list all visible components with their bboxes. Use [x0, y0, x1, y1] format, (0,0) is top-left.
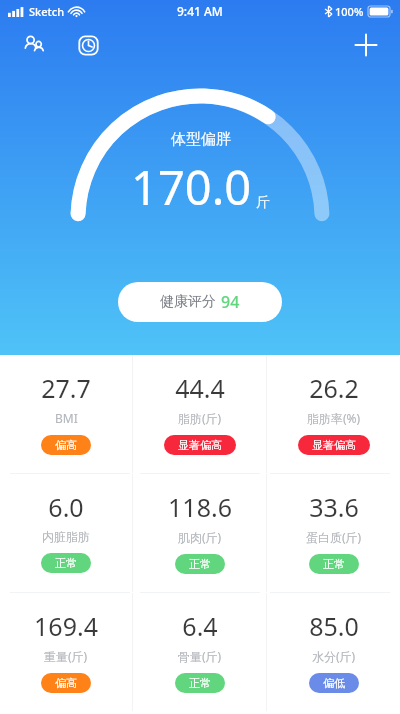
staticText: 显著偏高	[312, 438, 356, 452]
button[interactable]: 健康评分	[118, 282, 282, 322]
staticText: 85.0	[309, 609, 359, 643]
staticText: 斤	[256, 194, 270, 212]
staticText: 27.7	[41, 371, 91, 405]
staticText: 偏高	[55, 438, 77, 452]
staticText: 蛋白质(斤)	[306, 529, 362, 545]
staticText: 118.6	[168, 490, 232, 524]
staticText: 内脏脂肪	[42, 529, 90, 544]
staticText: 肌肉(斤)	[178, 529, 222, 545]
staticText: 脂肪(斤)	[178, 410, 222, 426]
staticText: 显著偏高	[178, 438, 222, 452]
staticText: 94	[221, 291, 240, 313]
button[interactable]: History	[68, 25, 108, 65]
staticText: 26.2	[309, 371, 359, 405]
staticText: 169.4	[34, 609, 98, 643]
button[interactable]: 44.4	[133, 355, 266, 471]
staticText: 水分(斤)	[312, 648, 356, 664]
button[interactable]: 33.6	[267, 474, 400, 590]
staticText: 正常	[189, 557, 211, 571]
staticText: 9:41 AM	[177, 3, 223, 19]
staticText: 骨量(斤)	[178, 648, 222, 664]
staticText: BMI	[55, 410, 78, 426]
button[interactable]: Users	[14, 25, 54, 65]
staticText: 6.4	[182, 609, 218, 643]
staticText: 170.0	[131, 155, 252, 219]
button[interactable]: 27.7	[0, 355, 132, 471]
staticText: 100%	[335, 4, 364, 19]
staticText: 33.6	[309, 490, 359, 524]
staticText: 44.4	[175, 371, 225, 405]
staticText: 重量(斤)	[44, 648, 88, 664]
staticText: 6.0	[48, 490, 84, 524]
button[interactable]: 6.0	[0, 474, 132, 589]
staticText: 正常	[323, 557, 345, 571]
button[interactable]: Add	[344, 23, 388, 67]
staticText: 脂肪率(%)	[307, 410, 361, 426]
button[interactable]: 169.4	[0, 593, 132, 709]
staticText: 健康评分	[160, 293, 216, 311]
staticText: 正常	[55, 556, 77, 570]
staticText: Sketch	[29, 4, 65, 19]
button[interactable]: 118.6	[133, 474, 266, 590]
button[interactable]: 85.0	[267, 593, 400, 709]
staticText: 体型偏胖	[171, 130, 231, 149]
button[interactable]: 6.4	[133, 593, 266, 709]
staticText: 偏低	[323, 676, 345, 690]
button[interactable]: 26.2	[267, 355, 400, 471]
staticText: 正常	[189, 676, 211, 690]
staticText: 偏高	[55, 676, 77, 690]
